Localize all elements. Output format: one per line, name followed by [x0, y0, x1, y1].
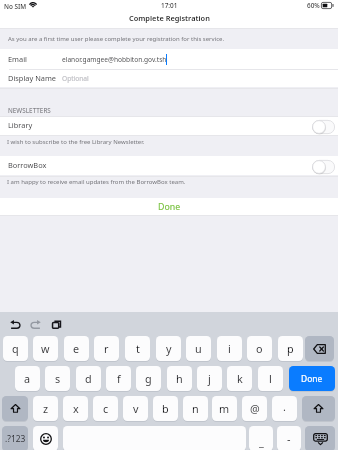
button[interactable]: z — [33, 396, 58, 421]
button[interactable]: j — [197, 366, 222, 391]
staticText: t — [136, 341, 140, 356]
button[interactable]: Toggle newsletter — [312, 120, 335, 134]
staticText: n — [192, 401, 199, 416]
staticText: y — [166, 341, 172, 356]
staticText: r — [104, 341, 109, 356]
button[interactable]: m — [212, 396, 237, 421]
button[interactable]: y — [156, 336, 181, 361]
button[interactable]: _ — [249, 426, 273, 450]
button[interactable]: a — [15, 366, 40, 391]
staticText: NEWSLETTERS — [8, 106, 51, 115]
button[interactable]: l — [258, 366, 283, 391]
staticText: Complete Registration — [129, 13, 210, 23]
button[interactable]: w — [33, 336, 58, 361]
button[interactable]: . — [272, 396, 297, 421]
button[interactable]: q — [3, 336, 28, 361]
staticText: i — [228, 341, 231, 356]
staticText: m — [219, 401, 230, 416]
staticText: Library — [8, 120, 33, 130]
button[interactable]: v — [123, 396, 148, 421]
staticText: l — [269, 371, 272, 386]
staticText: b — [162, 401, 169, 416]
staticText: Email — [8, 54, 27, 64]
button[interactable]: i — [217, 336, 242, 361]
button[interactable]: f — [106, 366, 131, 391]
button[interactable]: Done — [0, 198, 338, 215]
staticText: x — [73, 401, 79, 416]
staticText: . — [283, 399, 286, 414]
staticText: BorrowBox — [8, 160, 47, 170]
button[interactable]: t — [125, 336, 150, 361]
button[interactable]: .?123 — [2, 426, 28, 450]
button[interactable]: x — [63, 396, 88, 421]
button[interactable]: Undo — [10, 319, 21, 330]
staticText: o — [256, 341, 263, 356]
button[interactable]: Shift — [302, 396, 335, 421]
button[interactable]: Backspace — [305, 336, 334, 361]
staticText: a — [24, 371, 31, 386]
staticText: No SIM — [4, 2, 27, 11]
staticText: Display Name — [8, 73, 56, 83]
staticText: j — [208, 371, 211, 386]
button[interactable]: Done — [289, 366, 335, 391]
staticText: z — [43, 401, 49, 416]
button[interactable]: c — [93, 396, 118, 421]
button[interactable]: Redo — [30, 319, 41, 330]
button[interactable]: b — [153, 396, 178, 421]
button[interactable]: o — [247, 336, 272, 361]
button[interactable]: Hide keyboard — [305, 426, 335, 450]
staticText: h — [176, 371, 183, 386]
button[interactable]: n — [183, 396, 208, 421]
button[interactable] — [0, 117, 338, 135]
staticText: d — [85, 371, 92, 386]
button[interactable] — [0, 69, 338, 88]
staticText: _ — [259, 434, 264, 449]
staticText: elanor.gamgee@hobbiton.gov.tsh — [62, 55, 167, 64]
staticText: I am happy to receive email updates from… — [7, 178, 186, 186]
staticText: p — [287, 341, 294, 356]
button[interactable]: p — [278, 336, 303, 361]
staticText: @ — [250, 401, 260, 416]
button[interactable]: - — [277, 426, 301, 450]
button[interactable]: Copy — [51, 318, 62, 329]
staticText: u — [195, 341, 202, 356]
staticText: Done — [301, 373, 323, 384]
staticText: w — [41, 341, 50, 356]
button[interactable]: s — [45, 366, 70, 391]
button[interactable] — [0, 49, 338, 68]
button[interactable]: r — [94, 336, 119, 361]
button[interactable]: u — [186, 336, 211, 361]
button[interactable]: e — [64, 336, 89, 361]
button[interactable]: d — [76, 366, 101, 391]
button[interactable]: Emoji — [33, 426, 58, 450]
staticText: g — [145, 371, 152, 386]
staticText: Optional — [62, 74, 89, 83]
button[interactable]: h — [167, 366, 192, 391]
staticText: q — [12, 341, 19, 356]
staticText: Done — [158, 201, 181, 213]
staticText: 60% — [307, 1, 320, 10]
button[interactable]: Toggle newsletter — [312, 160, 335, 174]
button[interactable]: g — [136, 366, 161, 391]
staticText: e — [73, 341, 80, 356]
staticText: s — [55, 371, 61, 386]
button[interactable]: k — [227, 366, 252, 391]
button[interactable]: @ — [242, 396, 267, 421]
staticText: As you are a first time user please comp… — [8, 35, 225, 43]
staticText: - — [287, 431, 291, 446]
button[interactable]: Shift — [2, 396, 28, 421]
staticText: 17:01 — [161, 1, 178, 10]
staticText: c — [103, 401, 109, 416]
button[interactable] — [0, 156, 338, 175]
staticText: k — [237, 371, 243, 386]
staticText: v — [133, 401, 139, 416]
staticText: .?123 — [5, 433, 26, 444]
staticText: I wish to subscribe to the free Library … — [7, 138, 145, 146]
staticText: f — [117, 371, 121, 386]
